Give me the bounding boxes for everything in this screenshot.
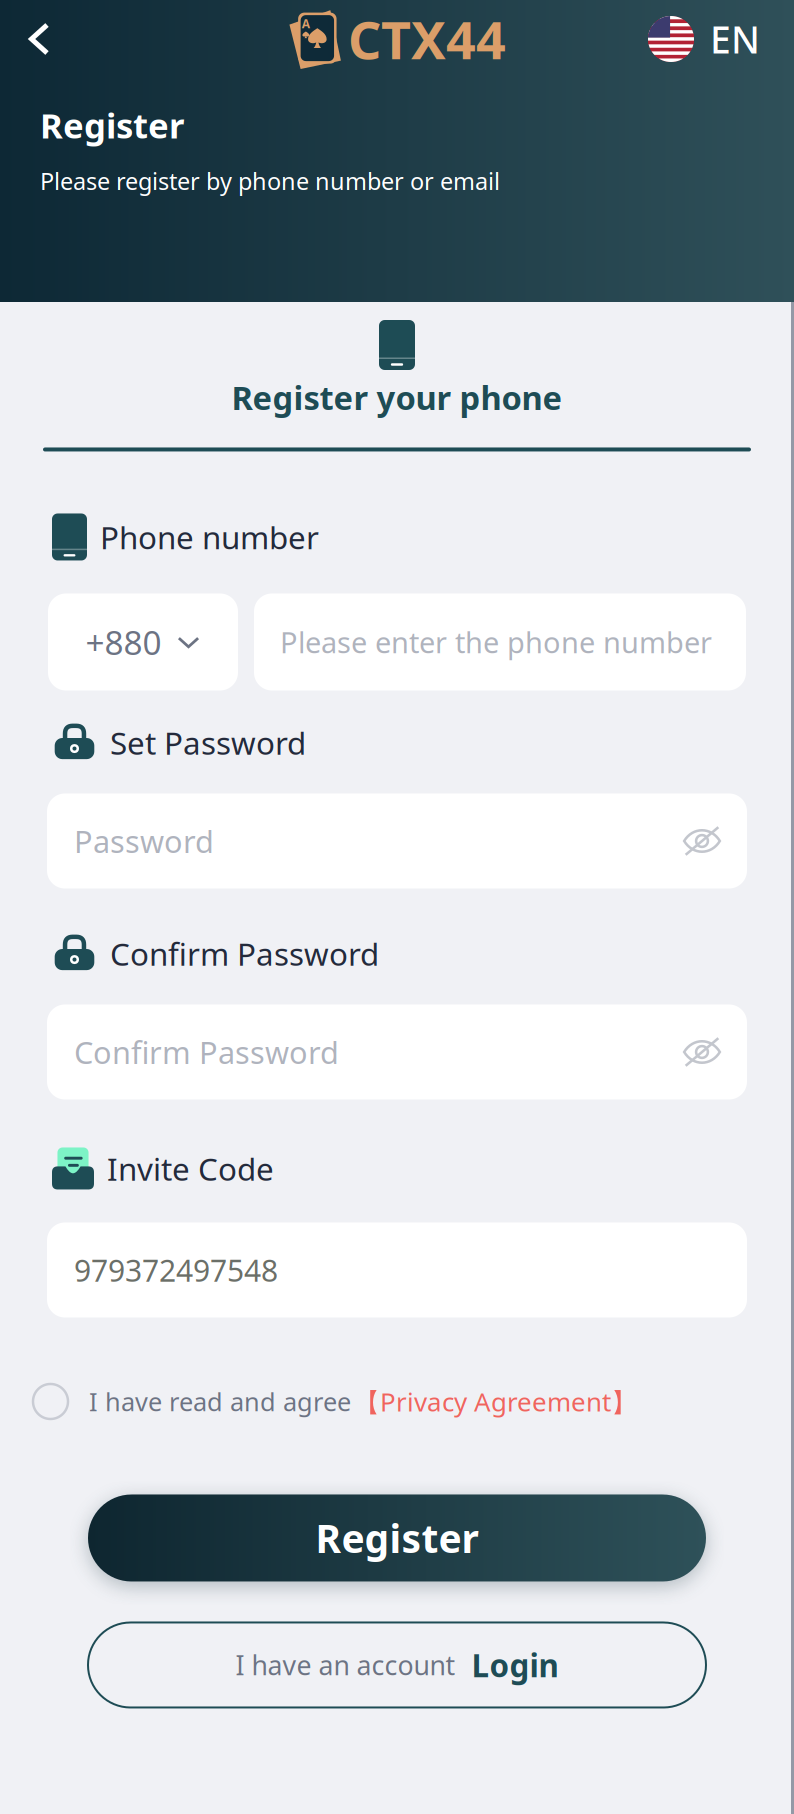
staticText: Register [315,1511,478,1564]
staticText: Password [74,820,214,862]
staticText: A [302,16,310,31]
staticText: 979372497548 [74,1250,278,1290]
staticText: Login [471,1644,558,1686]
staticText: I have read and agree [89,1384,351,1419]
button[interactable]: Register [88,1494,706,1581]
staticText: +880 [85,620,161,664]
staticText: I have an account [235,1647,455,1683]
staticText: Invite Code [107,1147,274,1190]
staticText: Phone number [100,516,319,558]
staticText: Register [40,102,184,148]
staticText: Set Password [110,721,306,764]
staticText: Please enter the phone number [280,622,712,662]
button[interactable]: Back [0,0,74,78]
button[interactable]: Show password [669,1039,721,1065]
staticText: Confirm Password [74,1031,339,1073]
staticText: Register your phone [231,375,562,419]
staticText: 【Privacy Agreement】 [354,1384,637,1419]
button[interactable]: I have read and agree [0,1376,794,1426]
button[interactable]: Show password [669,828,721,854]
staticText: EN [710,14,760,64]
button[interactable]: +880 [48,593,238,690]
staticText: CTX44 [348,4,506,74]
button[interactable]: I have an account [88,1622,706,1707]
button[interactable]: Language English [648,0,794,78]
staticText: Please register by phone number or email [40,165,500,197]
staticText: Confirm Password [110,932,379,975]
